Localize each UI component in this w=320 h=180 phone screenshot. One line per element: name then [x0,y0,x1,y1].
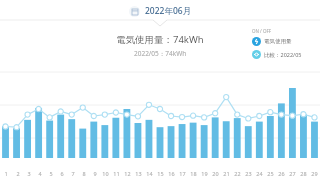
staticText: 26 [278,170,285,177]
staticText: 2022/05：74kWh [134,49,187,58]
staticText: 電気使用量：74kWh [116,33,204,46]
staticText: 22 [234,170,241,177]
staticText: 19 [201,170,208,177]
staticText: 25 [267,170,274,177]
staticText: 13 [135,170,142,177]
staticText: 8 [82,170,86,177]
staticText: 24 [256,170,263,177]
staticText: 28 [300,170,307,177]
staticText: 17 [179,170,186,177]
staticText: 10 [102,170,109,177]
staticText: 11 [113,170,120,177]
staticText: 6 [60,170,64,177]
staticText: 14 [146,170,153,177]
staticText: 27 [289,170,296,177]
button[interactable]: Calendar [123,3,198,19]
staticText: ON / OFF [252,28,272,34]
staticText: 3 [27,170,31,177]
staticText: 1 [4,170,8,177]
staticText: 15 [157,170,164,177]
staticText: 12 [124,170,131,177]
staticText: 4 [38,170,42,177]
staticText: 29 [311,170,318,177]
other: Calendar [129,6,140,17]
staticText: 7 [71,170,75,177]
staticText: 23 [245,170,252,177]
staticText: 比較：2022/05 [264,51,302,59]
staticText: 2 [16,170,20,177]
staticText: 16 [168,170,175,177]
staticText: 2022年06月 [145,5,192,17]
button[interactable]: 比較：2022/05 [252,50,302,59]
staticText: 18 [190,170,197,177]
staticText: 21 [223,170,230,177]
button[interactable]: 電気使用量 [252,37,292,46]
staticText: 9 [93,170,97,177]
staticText: 電気使用量 [264,38,292,45]
staticText: 5 [49,170,53,177]
staticText: 20 [212,170,219,177]
